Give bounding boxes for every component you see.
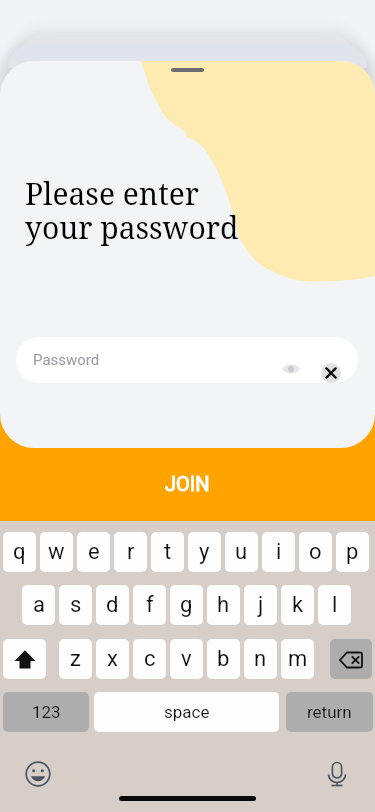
button[interactable]: u	[225, 532, 258, 572]
button[interactable]: Dictation	[324, 761, 350, 787]
button[interactable]: e	[77, 532, 110, 572]
button[interactable]: c	[133, 639, 166, 679]
staticText: q	[13, 539, 26, 565]
button[interactable]: l	[318, 585, 351, 625]
button[interactable]: i	[262, 532, 295, 572]
button[interactable]: g	[170, 585, 203, 625]
staticText: 123	[32, 702, 61, 722]
button[interactable]: v	[170, 639, 203, 679]
button[interactable]: Emoji keyboard	[25, 761, 51, 787]
button[interactable]: space	[94, 692, 279, 732]
staticText: r	[127, 539, 135, 565]
button[interactable]: s	[59, 585, 92, 625]
button[interactable]: Show password	[277, 355, 305, 383]
button[interactable]: j	[244, 585, 277, 625]
button[interactable]: d	[96, 585, 129, 625]
staticText: JOIN	[165, 472, 210, 495]
button[interactable]: k	[281, 585, 314, 625]
button[interactable]: Backspace	[330, 639, 372, 679]
button[interactable]: m	[281, 639, 314, 679]
staticText: k	[292, 592, 304, 618]
button[interactable]: t	[151, 532, 184, 572]
staticText: u	[235, 539, 248, 565]
staticText: t	[164, 539, 172, 565]
button[interactable]: Password	[16, 337, 358, 383]
staticText: m	[288, 646, 308, 672]
button[interactable]: p	[336, 532, 369, 572]
staticText: Please enter your password	[25, 173, 239, 247]
staticText: d	[106, 592, 119, 618]
staticText: i	[276, 539, 282, 565]
button[interactable]: w	[40, 532, 73, 572]
button[interactable]: h	[207, 585, 240, 625]
staticText: b	[217, 646, 230, 672]
button[interactable]: z	[59, 639, 92, 679]
staticText: space	[164, 702, 210, 722]
staticText: x	[107, 646, 118, 672]
button[interactable]: x	[96, 639, 129, 679]
button[interactable]: Shift	[3, 639, 46, 679]
staticText: Password	[33, 351, 100, 369]
button[interactable]: y	[188, 532, 221, 572]
staticText: return	[307, 702, 352, 722]
staticText: h	[217, 592, 230, 618]
staticText: y	[199, 539, 210, 565]
button[interactable]: n	[244, 639, 277, 679]
staticText: l	[332, 592, 338, 618]
staticText: s	[70, 592, 82, 618]
button[interactable]: Clear text	[321, 363, 341, 383]
staticText: f	[146, 592, 154, 618]
staticText: g	[180, 592, 193, 618]
button[interactable]: JOIN	[0, 448, 375, 521]
staticText: w	[48, 539, 65, 565]
staticText: v	[181, 646, 192, 672]
button[interactable]: f	[133, 585, 166, 625]
staticText: p	[346, 539, 359, 565]
button[interactable]: b	[207, 639, 240, 679]
button[interactable]: o	[299, 532, 332, 572]
staticText: z	[70, 646, 81, 672]
staticText: c	[144, 646, 156, 672]
staticText: a	[33, 592, 45, 618]
button[interactable]: q	[3, 532, 36, 572]
staticText: n	[254, 646, 267, 672]
button[interactable]: r	[114, 532, 147, 572]
staticText: j	[258, 592, 264, 618]
button[interactable]: 123	[3, 692, 89, 732]
button[interactable]: a	[22, 585, 55, 625]
staticText: o	[309, 539, 322, 565]
staticText: e	[88, 539, 100, 565]
button[interactable]: return	[286, 692, 373, 732]
